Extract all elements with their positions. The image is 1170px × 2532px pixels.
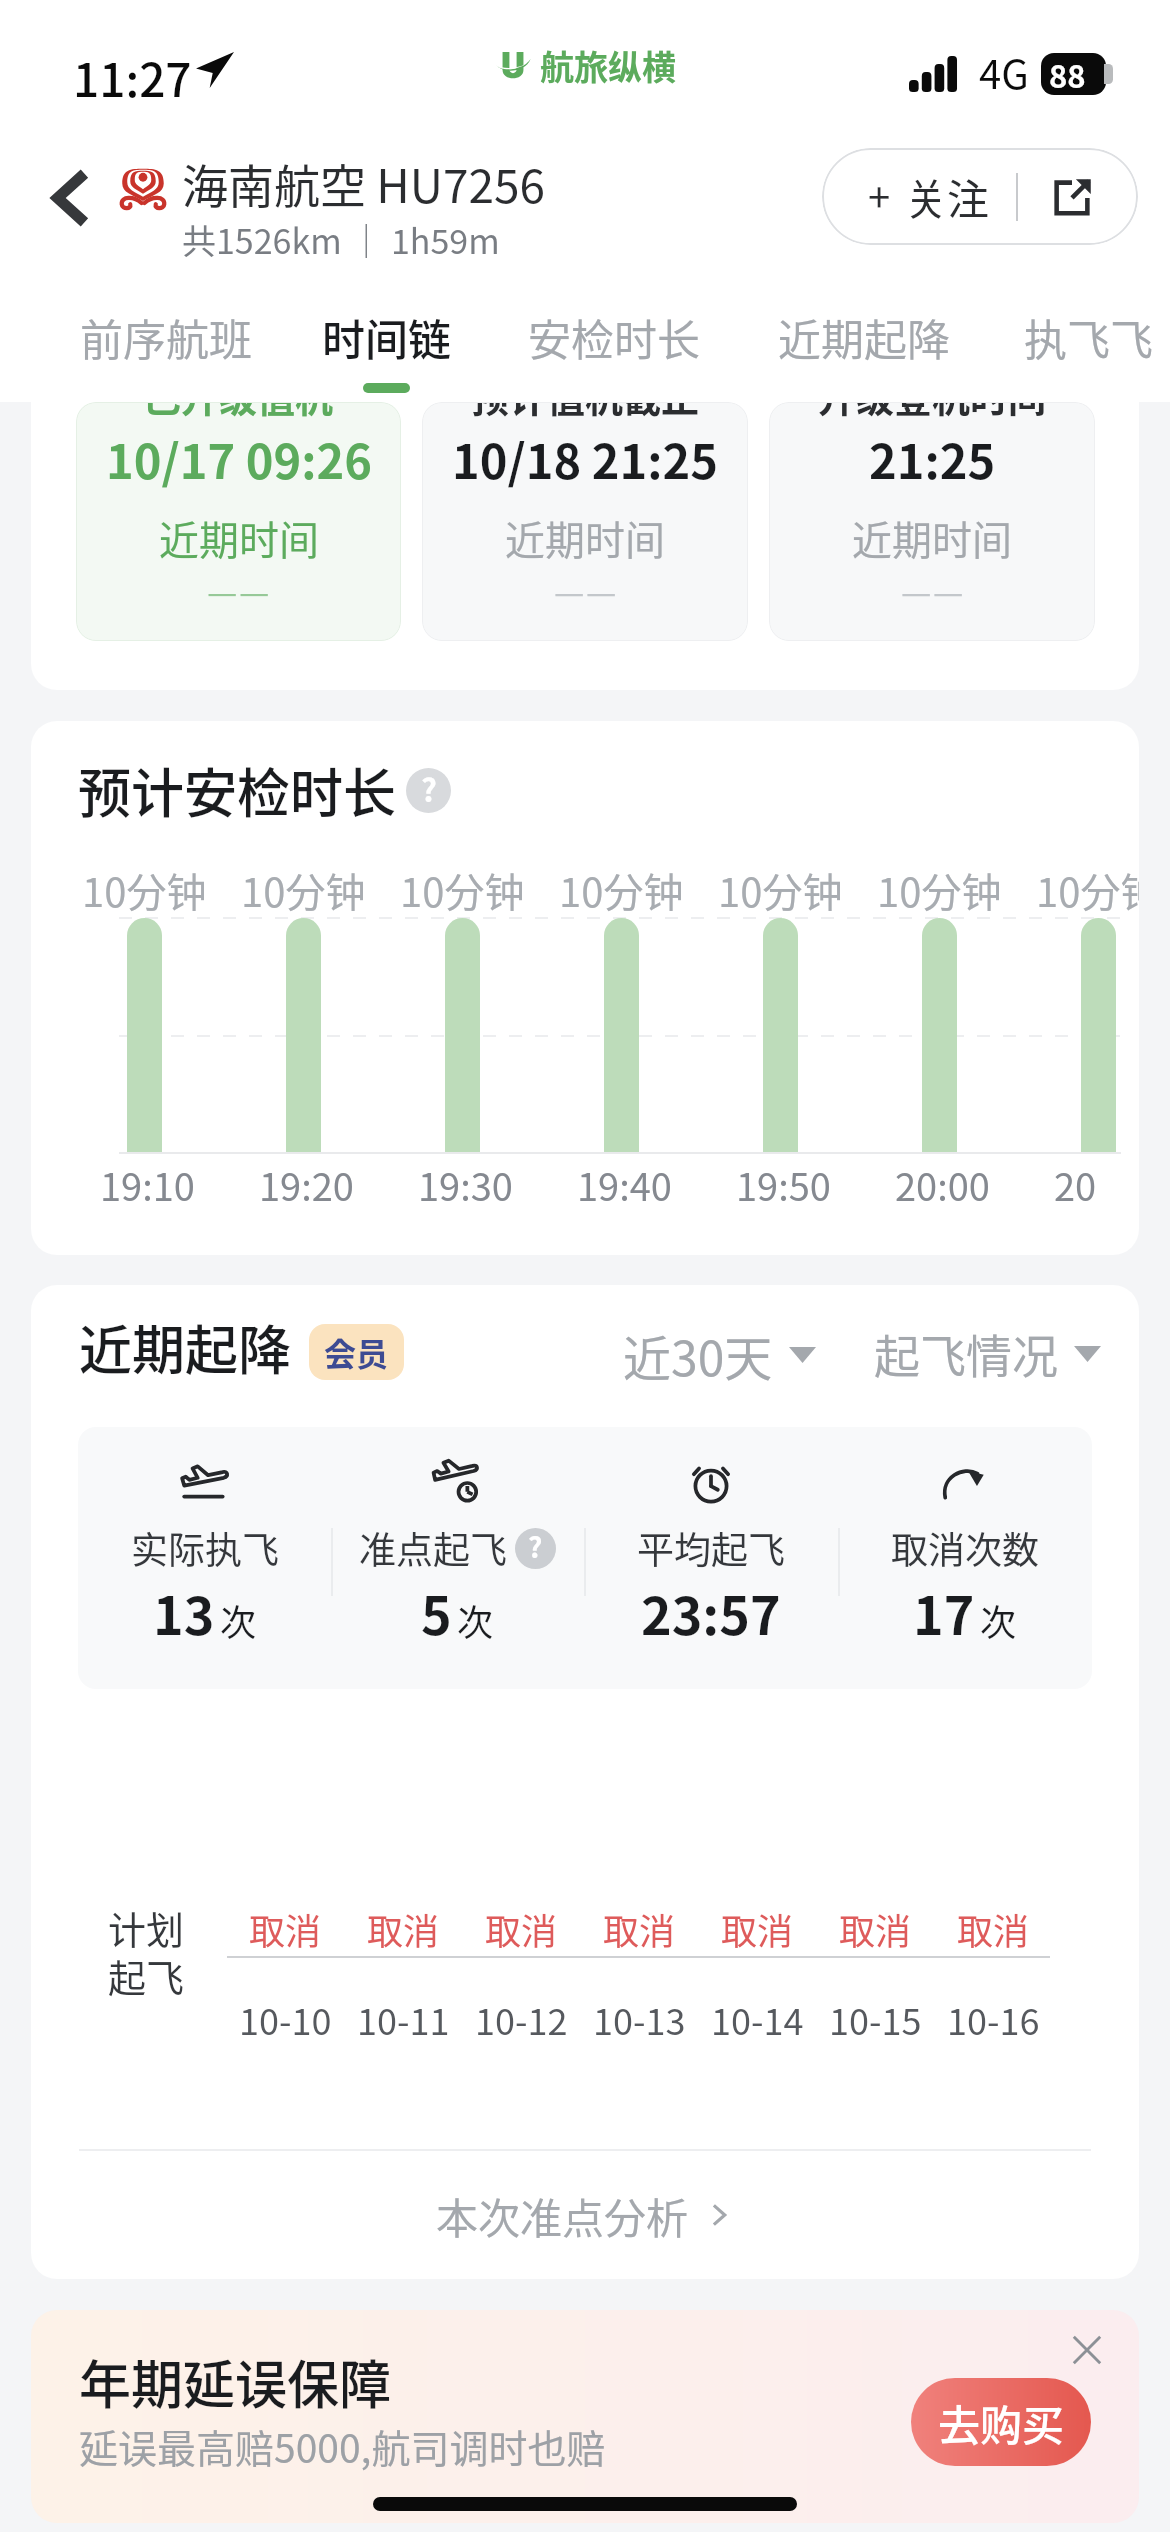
staticText: 10-12 [475,1993,568,2045]
button[interactable]: Back [47,165,95,231]
staticText: 次 [220,1594,257,1646]
button[interactable]: 时间链 [322,306,451,393]
staticText: — [554,566,585,615]
button[interactable]: 安检时长 [528,306,700,383]
staticText: 19:20 [259,1157,354,1212]
staticText: ? [528,1528,543,1567]
staticText: 起飞情况 [874,1320,1058,1387]
staticText: 19:30 [418,1157,513,1212]
staticText: 平均起飞 [637,1521,785,1575]
button[interactable]: 去购买 [911,2378,1091,2466]
staticText: 10/18 21:25 [452,424,718,492]
staticText: 10分钟 [400,861,525,919]
staticText: 近期时间 [852,509,1012,567]
staticText: 取消次数 [891,1521,1039,1575]
staticText: 海南航空 HU7256 [182,150,546,217]
staticText: 去购买 [938,2392,1065,2453]
button[interactable]: 近30天 [623,1320,816,1390]
staticText: 取消 [485,1903,558,1955]
staticText: 次 [457,1594,494,1646]
staticText: 关注 [905,166,990,227]
staticText: 23:57 [641,1575,781,1650]
staticText: 10-14 [711,1993,804,2045]
staticText: 10-15 [829,1993,922,2045]
button[interactable]: 执飞飞 [1024,306,1153,383]
button[interactable]: 本次准点分析 [31,2151,1139,2279]
staticText: 10-10 [239,1993,332,2045]
staticText: 计划 [108,1900,185,1955]
staticText: — [586,566,617,615]
staticText: 延误最高赔5000,航司调时也赔 [79,2418,606,2474]
staticText: — [207,566,238,615]
staticText: 近期时间 [159,509,319,567]
staticText: 执飞飞 [1024,306,1153,368]
staticText: — [901,566,932,615]
staticText: 取消 [367,1903,440,1955]
button[interactable]: 取消次数 [838,1427,1092,1689]
staticText: 10分钟 [559,861,684,919]
button[interactable]: Help [406,768,451,813]
other: Help [515,1528,556,1569]
button[interactable]: 实际执飞 [78,1427,331,1689]
staticText: 取消 [603,1903,676,1955]
staticText: 17 [913,1575,975,1650]
staticText: 11:27 [73,44,192,111]
staticText: 年期延误保障 [79,2344,392,2419]
staticText: 4G [979,43,1029,101]
staticText: 取消 [721,1903,794,1955]
staticText: 准点起飞 [359,1521,507,1575]
staticText: 10分钟 [718,861,843,919]
staticText: 实际执飞 [131,1521,279,1575]
staticText: 10-16 [947,1993,1040,2045]
staticText: 10-11 [357,1993,450,2045]
button[interactable]: 准点起飞 [331,1427,584,1689]
staticText: 10分钟 [241,861,366,919]
staticText: 预计安检时长 [78,752,396,829]
staticText: 10-13 [593,1993,686,2045]
other: Share [1048,173,1096,221]
staticText: 本次准点分析 [436,2185,689,2246]
staticText: 19:10 [100,1157,195,1212]
staticText: 已升级值机 [143,402,334,423]
staticText: 13 [153,1575,215,1650]
button[interactable]: 预计值机截止 [422,402,748,641]
staticText: 10分钟 [1036,861,1139,919]
staticText: + [868,166,891,224]
staticText: 预计值机截止 [471,402,700,423]
staticText: ? [421,768,437,811]
staticText: 安检时长 [528,306,700,368]
button[interactable]: 前序航班 [80,306,252,383]
staticText: 次 [980,1594,1017,1646]
staticText: 21:25 [869,424,996,492]
button[interactable]: 升级登机时间 [769,402,1095,641]
button[interactable]: 已升级值机 [76,402,401,641]
staticText: 19:40 [577,1157,672,1212]
staticText: 5 [421,1575,452,1650]
staticText: 取消 [839,1903,912,1955]
staticText: 取消 [957,1903,1030,1955]
button[interactable]: 近期起降 [778,306,950,383]
staticText: 88 [1049,52,1086,94]
staticText: 10分钟 [877,861,1002,919]
staticText: 10分钟 [82,861,207,919]
staticText: 共1526km ｜ 1h59m [182,215,500,264]
staticText: 20:00 [895,1157,990,1212]
button[interactable]: 平均起飞 [584,1427,838,1689]
staticText: 升级登机时间 [818,402,1047,423]
staticText: 19:50 [736,1157,831,1212]
staticText: — [933,566,964,615]
button[interactable]: Close [1065,2328,1109,2372]
staticText: 航旅纵横 [540,41,676,90]
staticText: 近期时间 [505,509,665,567]
staticText: 20 [1054,1157,1097,1212]
staticText: 近期起降 [778,306,950,368]
staticText: 10/17 09:26 [106,424,372,492]
staticText: 近期起降 [79,1309,291,1386]
button[interactable]: 起飞情况 [874,1320,1101,1387]
staticText: — [239,566,270,615]
staticText: 会员 [324,1329,389,1375]
staticText: 近30天 [623,1320,773,1390]
button[interactable]: + [822,148,1138,245]
staticText: 时间链 [322,306,451,368]
staticText: 起飞 [108,1948,185,2003]
